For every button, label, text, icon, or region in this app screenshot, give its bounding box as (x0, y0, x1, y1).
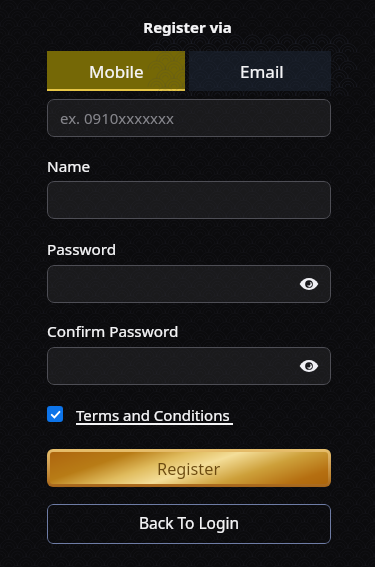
staticText: Email (240, 60, 284, 83)
button[interactable] (47, 181, 331, 219)
button[interactable]: Show password (297, 354, 321, 378)
staticText: Confirm Password (47, 321, 179, 342)
staticText: ex. 0910xxxxxxx (60, 108, 174, 128)
button[interactable]: Show password (47, 265, 331, 303)
button[interactable]: Register (50, 452, 328, 484)
staticText: Password (47, 239, 117, 260)
button[interactable]: Back To Login (47, 504, 331, 544)
staticText: Register (157, 458, 221, 480)
button[interactable]: Email (189, 51, 331, 91)
button[interactable]: Terms and Conditions (47, 406, 233, 422)
staticText: Register via (0, 17, 375, 37)
staticText: Back To Login (139, 512, 240, 533)
staticText: Mobile (89, 60, 144, 83)
button[interactable]: ex. 0910xxxxxxx (47, 99, 331, 137)
staticText: Name (47, 156, 91, 177)
button[interactable]: Show password (47, 347, 331, 385)
button[interactable]: Show password (297, 272, 321, 296)
button[interactable]: Mobile (47, 51, 185, 91)
staticText: Terms and Conditions (76, 405, 230, 421)
